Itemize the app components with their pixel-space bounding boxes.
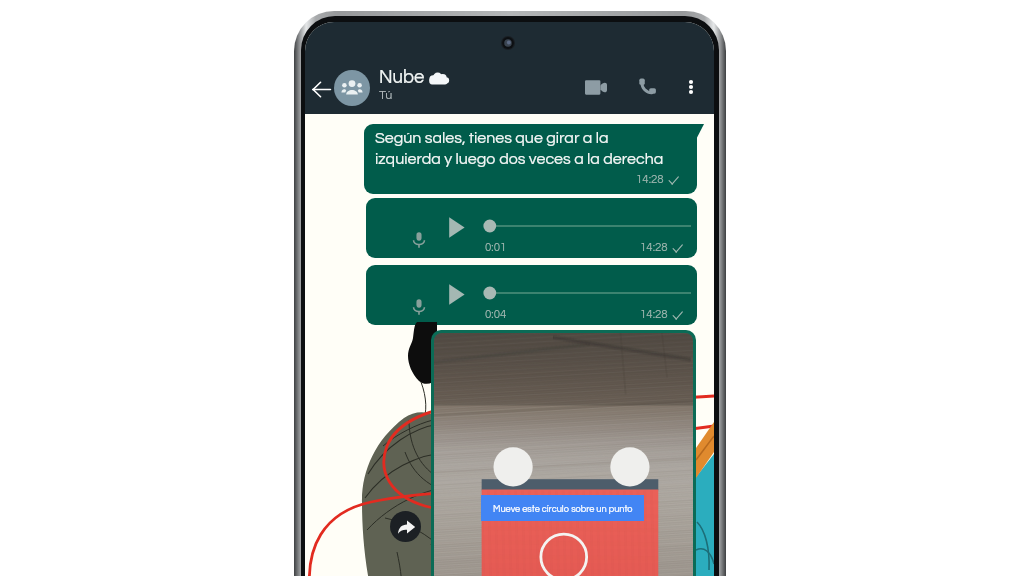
staticText: Nube [379,68,425,87]
staticText: 0:01 [485,242,507,254]
button[interactable]: Voice call [631,70,664,103]
staticText: Tú [379,89,393,102]
button[interactable]: Nube [379,67,449,102]
staticText: 14:28 [636,174,664,186]
button[interactable]: Back [306,74,337,105]
button[interactable]: Forward [390,511,421,542]
button[interactable]: Voice message 0:04 [366,265,697,325]
staticText: 0:04 [485,309,507,321]
staticText: 14:28 [640,242,668,254]
button[interactable]: Según sales, tienes que girar a la izqui… [364,124,697,194]
button[interactable]: Voice message 0:01 [366,198,697,258]
button[interactable]: More options [675,71,706,102]
staticText: Según sales, tienes que girar a la izqui… [375,130,664,167]
button[interactable]: Photo message [431,330,696,576]
staticText: Mueve este círculo sobre un punto [493,504,633,513]
button[interactable]: Group avatar [334,70,370,106]
staticText: 14:28 [640,309,668,321]
button[interactable]: Video call [579,71,612,104]
